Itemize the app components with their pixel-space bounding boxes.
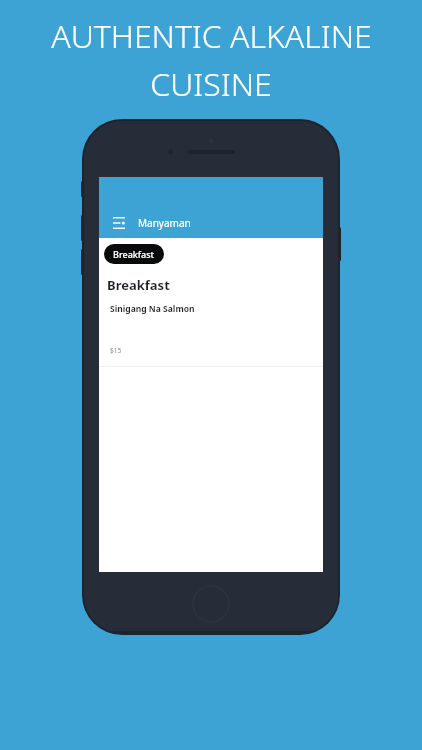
staticText: Breakfast (113, 248, 155, 260)
staticText: Manyaman (138, 216, 191, 230)
staticText: CUISINE (150, 62, 272, 106)
staticText: $15 (110, 346, 122, 355)
button[interactable]: Breakfast (104, 244, 164, 264)
button[interactable]: Open navigation menu (104, 208, 134, 238)
button[interactable]: Sinigang Na Salmon (99, 294, 323, 367)
staticText: Breakfast (107, 276, 170, 294)
staticText: Sinigang Na Salmon (110, 303, 195, 315)
staticText: AUTHENTIC ALKALINE (51, 14, 372, 58)
